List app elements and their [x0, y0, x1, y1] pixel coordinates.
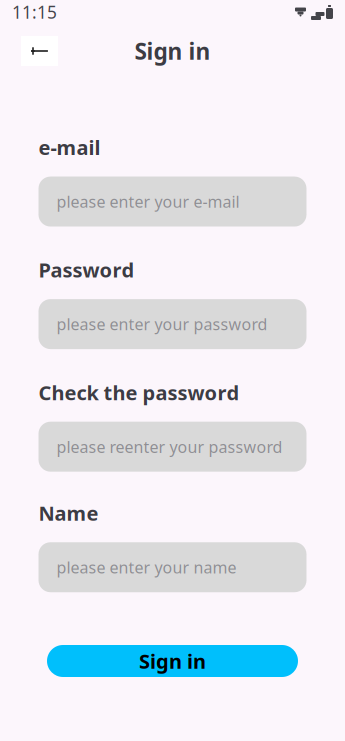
staticText: e-mail: [38, 134, 100, 161]
staticText: Sign in: [134, 36, 210, 66]
staticText: please reenter your password: [56, 436, 282, 457]
button[interactable]: Password: [38, 299, 306, 349]
staticText: Name: [38, 500, 98, 526]
button[interactable]: Sign in: [47, 645, 298, 677]
button[interactable]: Name: [38, 542, 306, 592]
staticText: please enter your e-mail: [56, 191, 239, 212]
staticText: please enter your name: [56, 557, 236, 578]
staticText: Check the password: [38, 379, 239, 406]
button[interactable]: e-mail: [38, 177, 306, 227]
staticText: Sign in: [139, 648, 206, 674]
staticText: please enter your password: [56, 313, 267, 335]
button[interactable]: Back: [21, 36, 58, 66]
button[interactable]: Check the password: [38, 422, 306, 472]
staticText: Password: [38, 257, 134, 283]
staticText: 11:15: [12, 0, 57, 23]
